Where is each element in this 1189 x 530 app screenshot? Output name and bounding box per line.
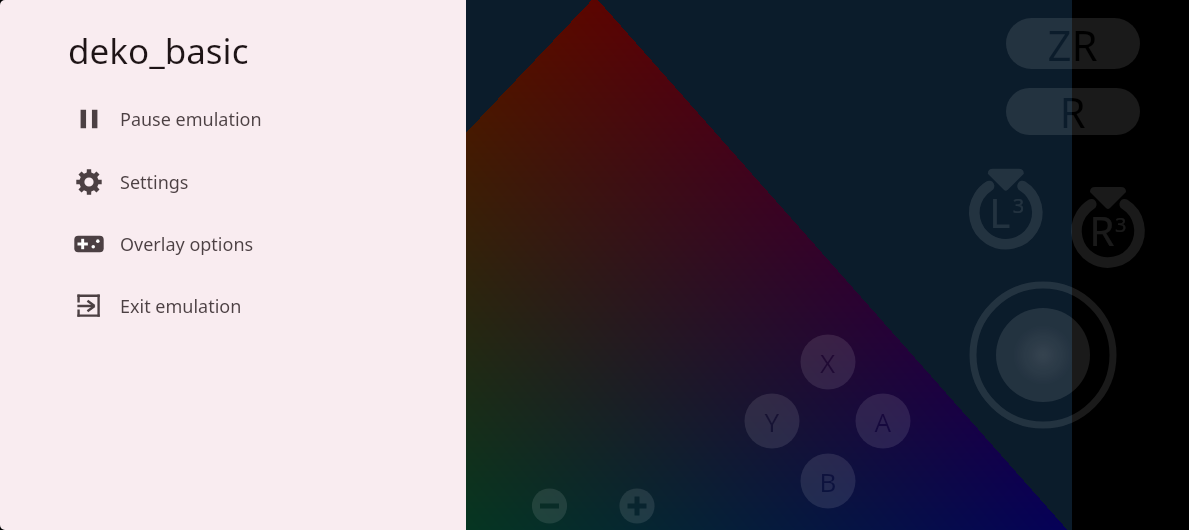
button[interactable]: R3 stick press: [1071, 194, 1145, 268]
staticText: Exit emulation: [120, 294, 242, 319]
button[interactable]: Right analog stick: [969, 281, 1117, 429]
staticText: Pause emulation: [120, 107, 262, 132]
button[interactable]: B: [801, 454, 856, 509]
button[interactable]: Settings: [0, 156, 466, 208]
staticText: Settings: [120, 170, 189, 195]
button[interactable]: A: [856, 394, 911, 449]
button[interactable]: Minus: [532, 488, 567, 523]
button[interactable]: ZR: [1006, 18, 1140, 69]
button[interactable]: X: [801, 335, 856, 390]
staticText: deko_basic: [68, 27, 249, 75]
button[interactable]: Pause emulation: [0, 93, 466, 145]
button[interactable]: R: [1006, 88, 1140, 135]
button[interactable]: L3 stick press: [969, 176, 1043, 250]
button[interactable]: Exit emulation: [0, 280, 466, 332]
button[interactable]: Plus: [619, 488, 654, 523]
staticText: Overlay options: [120, 232, 254, 257]
button[interactable]: Overlay options: [0, 218, 466, 270]
button[interactable]: Y: [745, 394, 800, 449]
